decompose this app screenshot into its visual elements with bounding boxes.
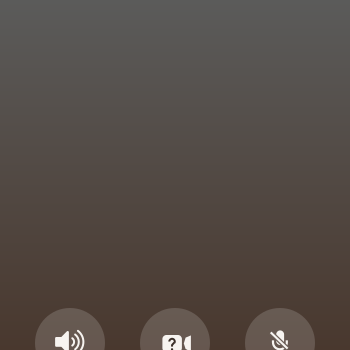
button[interactable]: Camera [140, 308, 210, 350]
button[interactable]: Mute [245, 308, 315, 350]
button[interactable]: Speaker [35, 308, 105, 350]
